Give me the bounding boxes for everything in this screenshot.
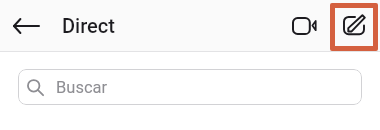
staticText: Direct <box>62 14 115 37</box>
button[interactable]: Video call <box>287 11 321 41</box>
button[interactable]: New message <box>338 10 370 40</box>
staticText: Buscar <box>56 78 108 97</box>
button[interactable]: Back <box>9 11 43 41</box>
button[interactable]: Buscar <box>18 69 362 105</box>
